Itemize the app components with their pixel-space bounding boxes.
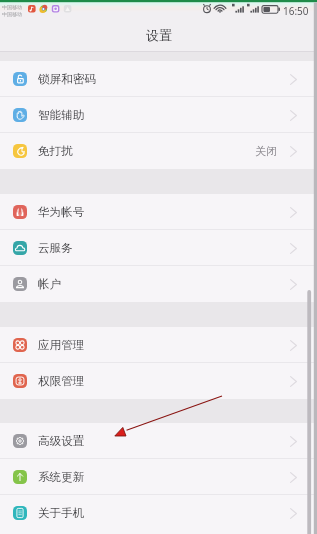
button[interactable]: 应用管理 xyxy=(0,327,317,363)
staticText: 设置 xyxy=(146,27,172,43)
staticText: 关于手机 xyxy=(38,506,85,521)
staticText: 免打扰 xyxy=(38,144,73,159)
staticText: 云服务 xyxy=(38,241,73,256)
other: 华为帐号 xyxy=(13,205,27,219)
other: 帐户 xyxy=(13,277,27,291)
button[interactable]: 权限管理 xyxy=(0,363,317,399)
other: 锁屏和密码 xyxy=(13,72,27,86)
staticText: 系统更新 xyxy=(38,470,85,485)
button[interactable]: 系统更新 xyxy=(0,459,317,495)
other: 云服务 xyxy=(13,241,27,255)
button[interactable]: 云服务 xyxy=(0,230,317,266)
other: 智能辅助 xyxy=(13,108,27,122)
other: 权限管理 xyxy=(13,374,27,388)
button[interactable]: 帐户 xyxy=(0,266,317,302)
other: 关于手机 xyxy=(13,506,27,520)
button[interactable]: 华为帐号 xyxy=(0,194,317,230)
button[interactable]: 免打扰 xyxy=(0,133,317,169)
button[interactable]: 关于手机 xyxy=(0,495,317,531)
staticText: 华为帐号 xyxy=(38,205,85,220)
other: 系统更新 xyxy=(13,470,27,484)
other: 高级设置 xyxy=(13,434,27,448)
staticText: 关闭 xyxy=(255,144,277,158)
staticText: 帐户 xyxy=(38,277,62,292)
button[interactable]: 锁屏和密码 xyxy=(0,61,317,97)
button[interactable]: 智能辅助 xyxy=(0,97,317,133)
staticText: 应用管理 xyxy=(38,338,85,353)
staticText: 中国移动 xyxy=(2,11,22,17)
staticText: 锁屏和密码 xyxy=(38,72,96,87)
button[interactable]: 高级设置 xyxy=(0,423,317,459)
staticText: 智能辅助 xyxy=(38,108,85,123)
staticText: 权限管理 xyxy=(38,374,85,389)
staticText: 16:50 xyxy=(283,4,309,18)
other: 应用管理 xyxy=(13,338,27,352)
other: 免打扰 xyxy=(13,144,27,158)
staticText: 中国移动 xyxy=(2,4,22,10)
staticText: 高级设置 xyxy=(38,434,85,449)
